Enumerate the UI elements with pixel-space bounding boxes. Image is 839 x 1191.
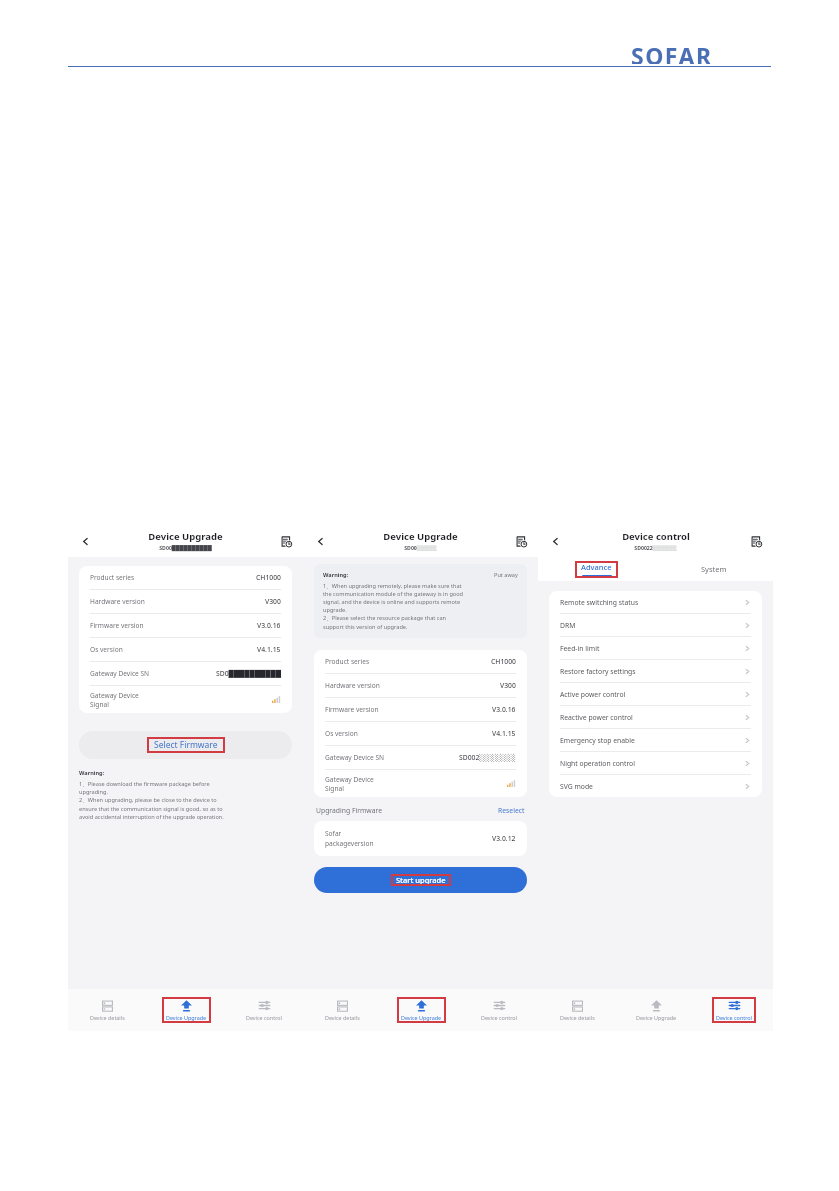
staticText: SD002░░░░░░░ — [459, 753, 516, 762]
button[interactable]: Device control — [460, 989, 538, 1031]
staticText: Gateway Device SN — [325, 753, 385, 762]
button[interactable]: Back — [312, 533, 328, 549]
staticText: Warning: — [79, 769, 105, 777]
button[interactable]: Device control — [695, 989, 773, 1031]
staticText: Hardware version — [325, 681, 380, 690]
staticText: Start upgrade — [396, 875, 446, 885]
staticText: V300 — [265, 597, 281, 606]
button[interactable]: Device Upgrade — [147, 989, 225, 1031]
button[interactable]: Back — [77, 533, 93, 549]
staticText: System — [701, 564, 727, 574]
staticText: V4.1.15 — [257, 645, 281, 654]
staticText: Device Upgrade — [401, 1014, 442, 1021]
staticText: Device Upgrade — [383, 530, 458, 543]
staticText: Device Upgrade — [636, 1014, 677, 1021]
button[interactable]: Advance — [538, 557, 655, 581]
staticText: Device control — [716, 1014, 752, 1021]
button[interactable]: Device details — [303, 989, 382, 1031]
staticText: Active power control — [560, 690, 626, 699]
staticText: Reselect — [498, 806, 525, 815]
staticText: SD00░░░░░ — [404, 544, 437, 551]
button[interactable]: Back — [547, 533, 563, 549]
staticText: Device Upgrade — [148, 530, 223, 543]
staticText: Restore factory settings — [560, 667, 636, 676]
staticText: Device control — [622, 530, 690, 543]
staticText: Device details — [560, 1014, 595, 1021]
staticText: Emergency stop enable — [560, 736, 635, 745]
staticText: Sofar packageversion — [325, 829, 374, 848]
staticText: SVG mode — [560, 782, 593, 791]
staticText: Firmware version — [90, 621, 144, 630]
button[interactable]: Device details — [538, 989, 617, 1031]
button[interactable]: Night operation control — [560, 752, 751, 774]
staticText: Device Upgrade — [166, 1014, 207, 1021]
button[interactable]: Device details — [68, 989, 147, 1031]
staticText: V300 — [500, 681, 516, 690]
staticText: Night operation control — [560, 759, 635, 768]
button[interactable]: SVG mode — [560, 775, 751, 797]
staticText: CH1000 — [256, 573, 281, 582]
button[interactable]: History record — [748, 533, 764, 549]
staticText: Product series — [90, 573, 135, 582]
button[interactable]: System — [655, 557, 773, 581]
staticText: SD0██████████ — [216, 669, 281, 678]
staticText: Hardware version — [90, 597, 145, 606]
button[interactable]: Emergency stop enable — [560, 729, 751, 751]
staticText: Reactive power control — [560, 713, 633, 722]
staticText: Upgrading Firmware — [316, 806, 382, 815]
staticText: Gateway Device Signal — [325, 775, 374, 793]
staticText: 1、When upgrading remotely, please make s… — [323, 582, 464, 631]
staticText: Put away — [494, 571, 518, 579]
staticText: V3.0.16 — [492, 705, 516, 714]
staticText: Gateway Device Signal — [90, 691, 139, 709]
button[interactable]: Feed-in limit — [560, 637, 751, 659]
staticText: Feed-in limit — [560, 644, 600, 653]
button[interactable]: Device control — [225, 989, 303, 1031]
staticText: Os version — [325, 729, 358, 738]
staticText: SD0022░░░░░░ — [634, 544, 677, 551]
staticText: CH1000 — [491, 657, 516, 666]
staticText: V4.1.15 — [492, 729, 516, 738]
staticText: Firmware version — [325, 705, 379, 714]
staticText: Device details — [325, 1014, 360, 1021]
button[interactable]: History record — [278, 533, 294, 549]
button[interactable]: Active power control — [560, 683, 751, 705]
button[interactable]: Start upgrade — [314, 867, 527, 893]
button[interactable]: DRM — [560, 614, 751, 636]
button[interactable]: Reselect — [498, 806, 525, 815]
button[interactable]: Restore factory settings — [560, 660, 751, 682]
staticText: V3.0.12 — [492, 834, 516, 843]
button[interactable]: Remote switching status — [560, 591, 751, 613]
staticText: Select Firmware — [154, 739, 218, 751]
staticText: Warning: — [323, 571, 349, 579]
button[interactable]: Reactive power control — [560, 706, 751, 728]
button[interactable]: Select Firmware — [79, 731, 292, 759]
staticText: Remote switching status — [560, 598, 639, 607]
staticText: SD00██████████ — [159, 544, 212, 551]
staticText: V3.0.16 — [257, 621, 281, 630]
staticText: Gateway Device SN — [90, 669, 150, 678]
staticText: 1、Please download the firmware package b… — [79, 780, 224, 821]
button[interactable]: Device Upgrade — [382, 989, 460, 1031]
staticText: Product series — [325, 657, 370, 666]
staticText: DRM — [560, 621, 576, 630]
button[interactable]: Device Upgrade — [617, 989, 695, 1031]
staticText: Device control — [246, 1014, 282, 1021]
staticText: Advance — [581, 562, 612, 572]
staticText: Os version — [90, 645, 123, 654]
staticText: Device details — [90, 1014, 125, 1021]
staticText: SOFAR — [631, 40, 713, 64]
button[interactable]: History record — [513, 533, 529, 549]
staticText: Device control — [481, 1014, 517, 1021]
